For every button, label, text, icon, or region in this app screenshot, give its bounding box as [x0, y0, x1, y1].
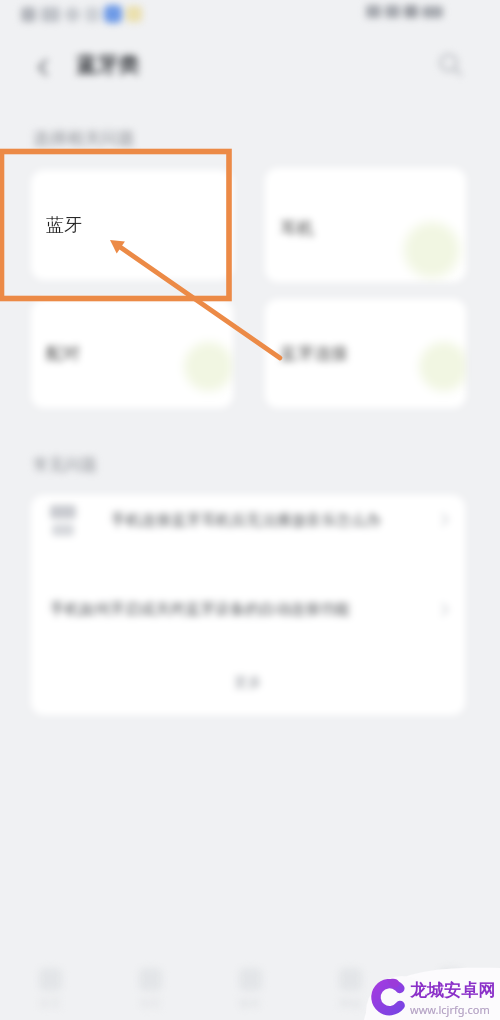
button[interactable]: [31, 170, 233, 280]
staticText: 龙城安卓网: [410, 980, 495, 1001]
staticText: 手机如何开启或关闭蓝牙设备的自动连接功能: [50, 600, 350, 619]
staticText: 蓝牙连接: [280, 343, 348, 364]
staticText: 选择相关问题: [33, 128, 135, 149]
staticText: 更多: [234, 674, 262, 692]
button[interactable]: 手机连接蓝牙耳机后无法播放音乐怎么办: [31, 495, 465, 563]
staticText: 手机连接蓝牙耳机后无法播放音乐怎么办: [111, 511, 381, 530]
button[interactable]: 返回: [27, 51, 59, 83]
staticText: 蓝牙: [46, 214, 82, 237]
button[interactable]: 耳机: [265, 168, 466, 282]
staticText: 蓝牙类: [76, 52, 139, 78]
staticText: 常见问题: [33, 455, 97, 475]
button[interactable]: 我的: [400, 958, 500, 1020]
staticText: www.lcjrfg.com: [410, 1002, 490, 1017]
button[interactable]: 手机如何开启或关闭蓝牙设备的自动连接功能: [31, 583, 465, 637]
staticText: 我的: [439, 996, 461, 1010]
button[interactable]: 更多: [31, 660, 465, 706]
button[interactable]: 蓝牙连接: [265, 299, 466, 408]
staticText: 配对: [46, 343, 80, 364]
button[interactable]: 配对: [31, 299, 233, 408]
button[interactable]: 搜索: [433, 47, 467, 81]
staticText: 耳机: [280, 218, 314, 239]
button[interactable]: 商城: [300, 958, 400, 1020]
